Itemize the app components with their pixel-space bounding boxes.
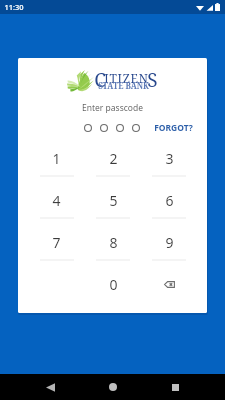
staticText: 7 (52, 233, 61, 252)
button[interactable]: 4 (28, 184, 85, 226)
staticText: Enter passcode (82, 102, 143, 114)
staticText: 11:30 (4, 2, 24, 12)
staticText: 2 (109, 149, 118, 168)
button[interactable]: Back (37, 374, 63, 400)
button[interactable]: Backspace (141, 268, 197, 310)
staticText: 8 (109, 233, 118, 252)
staticText: 4 (52, 191, 61, 210)
button[interactable]: 6 (141, 184, 197, 226)
staticText: 9 (165, 233, 174, 252)
button[interactable]: 2 (85, 142, 141, 184)
staticText: 5 (109, 191, 118, 210)
staticText: STATE BANK (98, 80, 149, 91)
button[interactable]: 7 (28, 226, 85, 268)
staticText: 3 (165, 149, 174, 168)
button[interactable]: 9 (141, 226, 197, 268)
button[interactable]: Home (100, 374, 126, 400)
button[interactable]: 1 (28, 142, 85, 184)
staticText: FORGOT? (154, 122, 193, 134)
staticText: 6 (165, 191, 174, 210)
button[interactable]: 5 (85, 184, 141, 226)
staticText: 1 (52, 149, 61, 168)
button[interactable]: 8 (85, 226, 141, 268)
other: Backspace (164, 281, 175, 288)
button[interactable]: 0 (85, 268, 141, 310)
button[interactable]: FORGOT? (153, 120, 194, 136)
button[interactable]: Recent apps (162, 374, 188, 400)
staticText: S (147, 67, 158, 93)
staticText: 0 (109, 275, 118, 294)
button[interactable]: 3 (141, 142, 197, 184)
staticText: C (94, 67, 106, 93)
staticText: ITIZEN (104, 70, 149, 86)
